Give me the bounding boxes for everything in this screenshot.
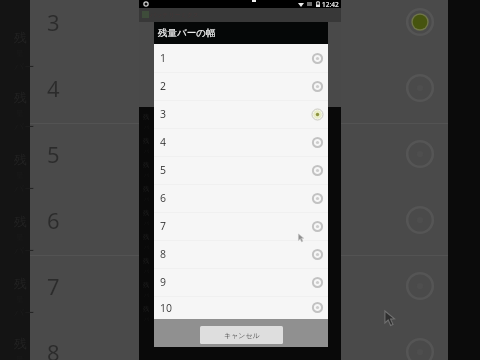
staticText: 残: [14, 89, 27, 105]
button[interactable]: 5: [154, 156, 328, 184]
staticText: 残: [143, 161, 150, 169]
staticText: 残: [14, 213, 27, 229]
staticText: 残: [143, 233, 150, 241]
staticText: 7: [47, 271, 60, 301]
button[interactable]: 9: [154, 268, 328, 296]
staticText: 7: [160, 219, 167, 233]
staticText: 8: [160, 247, 167, 261]
staticText: バー: [14, 120, 35, 133]
button[interactable]: Width 7: [406, 272, 434, 300]
button[interactable]: 10: [154, 296, 328, 319]
button[interactable]: 2: [154, 72, 328, 100]
button[interactable]: 7: [154, 212, 328, 240]
staticText: 3: [160, 107, 167, 121]
button[interactable]: Width 3: [406, 8, 434, 36]
staticText: 1: [160, 51, 167, 65]
staticText: 8: [47, 337, 60, 360]
button[interactable]: 4: [154, 128, 328, 156]
staticText: 残: [14, 151, 27, 167]
staticText: 6: [160, 191, 167, 205]
staticText: 残: [143, 209, 150, 217]
button[interactable]: 1: [154, 44, 328, 72]
staticText: 9: [160, 275, 167, 289]
staticText: バー: [14, 60, 35, 73]
button[interactable]: Width 5: [406, 140, 434, 168]
staticText: 2: [160, 79, 167, 93]
button[interactable]: 3: [154, 100, 328, 128]
button[interactable]: Width 4: [406, 74, 434, 102]
button[interactable]: Width 8: [406, 338, 434, 360]
staticText: 10: [160, 301, 173, 315]
staticText: 4: [47, 73, 60, 103]
staticText: 残: [143, 257, 150, 265]
staticText: 残: [143, 185, 150, 193]
staticText: 残: [143, 137, 150, 145]
staticText: 3: [47, 7, 60, 37]
button[interactable]: 6: [154, 184, 328, 212]
staticText: 5: [160, 163, 167, 177]
staticText: 残量バーの幅: [158, 27, 216, 39]
staticText: キャンセル: [224, 331, 260, 340]
button[interactable]: キャンセル: [200, 326, 283, 344]
staticText: 6: [47, 205, 60, 235]
staticText: 残: [14, 335, 27, 351]
staticText: バー: [14, 244, 35, 257]
staticText: 残: [143, 113, 150, 121]
button[interactable]: 8: [154, 240, 328, 268]
staticText: 12:42: [322, 0, 339, 8]
staticText: 残: [143, 281, 150, 289]
staticText: 4: [160, 135, 167, 149]
staticText: 残: [14, 29, 27, 45]
staticText: 残: [14, 275, 27, 291]
staticText: 残: [143, 305, 150, 313]
staticText: バー: [14, 306, 35, 319]
staticText: 5: [47, 139, 60, 169]
staticText: バー: [14, 182, 35, 195]
button[interactable]: Width 6: [406, 206, 434, 234]
